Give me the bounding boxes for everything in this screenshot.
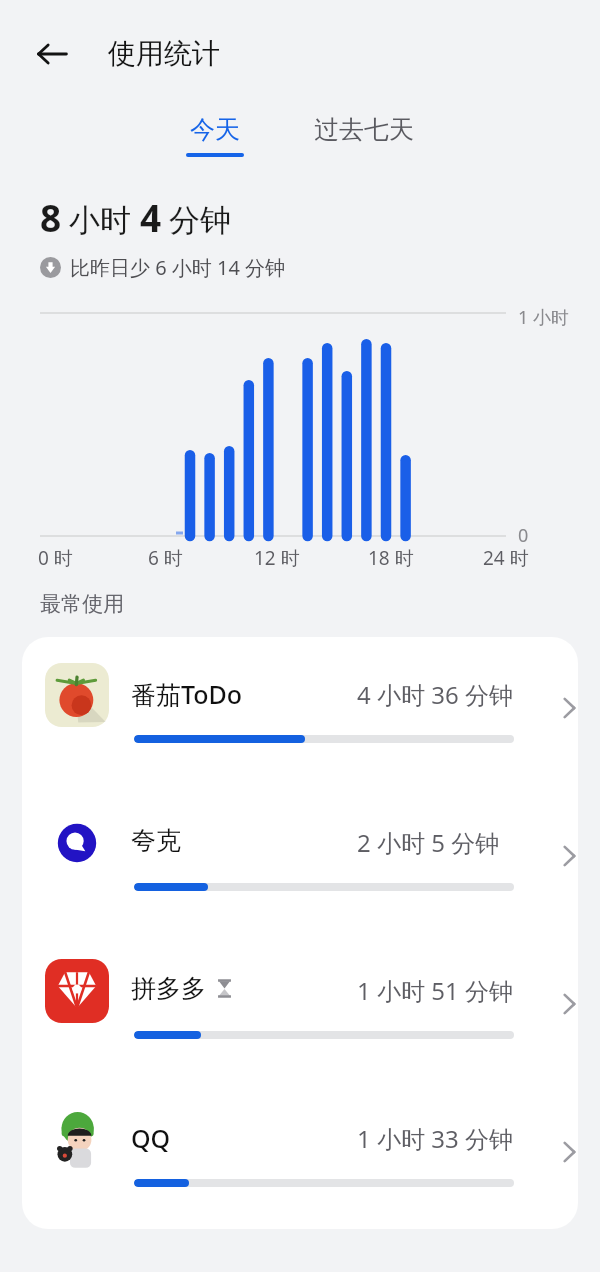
staticText: 0: [518, 523, 529, 548]
button[interactable]: 过去七天: [302, 110, 426, 161]
staticText: 小时: [69, 201, 131, 240]
staticText: 2 小时 5 分钟: [357, 826, 500, 859]
staticText: QQ: [131, 1121, 171, 1155]
staticText: 6 时: [148, 545, 183, 571]
staticText: 4: [140, 192, 162, 242]
staticText: 分钟: [169, 201, 231, 240]
staticText: 拼多多: [131, 973, 206, 1004]
staticText: 0 时: [38, 545, 73, 571]
staticText: 8: [40, 192, 62, 242]
button[interactable]: 番茄ToDo: [22, 637, 578, 785]
staticText: 番茄ToDo: [131, 677, 243, 711]
button[interactable]: 返回: [26, 28, 78, 80]
button[interactable]: 今天: [174, 110, 256, 161]
button[interactable]: 查看 夸克 详情: [546, 833, 578, 879]
staticText: 12 时: [254, 545, 300, 571]
staticText: 1 小时 51 分钟: [357, 974, 513, 1007]
button[interactable]: QQ: [22, 1081, 578, 1229]
staticText: 4 小时 36 分钟: [357, 678, 513, 711]
button[interactable]: 拼多多: [22, 933, 578, 1081]
staticText: 1 小时 33 分钟: [357, 1122, 513, 1155]
staticText: 1 小时: [518, 305, 569, 330]
staticText: 最常使用: [40, 591, 124, 617]
button[interactable]: 夸克: [22, 785, 578, 933]
staticText: 夸克: [131, 825, 181, 856]
staticText: 今天: [190, 114, 240, 145]
staticText: 24 时: [483, 545, 529, 571]
staticText: 18 时: [368, 545, 414, 571]
button[interactable]: 查看 QQ 详情: [546, 1129, 578, 1175]
button[interactable]: 查看 番茄ToDo 详情: [546, 685, 578, 731]
staticText: 过去七天: [314, 114, 414, 145]
staticText: 使用统计: [108, 36, 220, 71]
button[interactable]: 查看 拼多多 详情: [546, 981, 578, 1027]
staticText: 比昨日少 6 小时 14 分钟: [70, 254, 286, 281]
